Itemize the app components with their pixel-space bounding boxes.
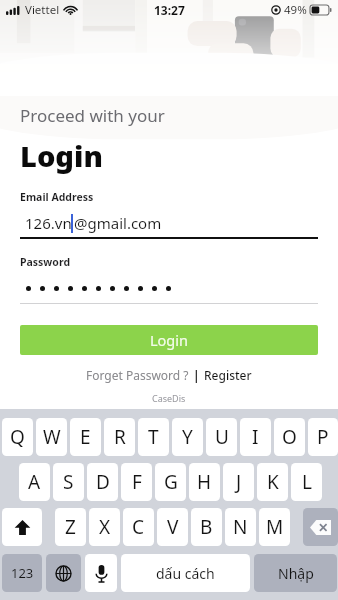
staticText: Email Address: [20, 190, 94, 204]
button[interactable]: R: [104, 418, 135, 456]
button[interactable]: W: [36, 418, 67, 456]
button[interactable]: S: [53, 463, 84, 501]
staticText: J: [236, 469, 242, 495]
staticText: |: [193, 367, 200, 383]
button[interactable]: X: [89, 508, 120, 546]
staticText: G: [164, 469, 178, 495]
staticText: X: [99, 514, 111, 540]
staticText: Viettel: [25, 2, 60, 18]
button[interactable]: Z: [55, 508, 86, 546]
staticText: S: [63, 469, 74, 495]
button[interactable]: B: [191, 508, 222, 546]
button[interactable]: Enter: [254, 554, 337, 592]
staticText: D: [96, 469, 110, 495]
staticText: R: [114, 424, 126, 450]
button[interactable]: U: [206, 418, 237, 456]
button[interactable]: O: [274, 418, 305, 456]
staticText: V: [167, 514, 179, 540]
button[interactable]: V: [157, 508, 188, 546]
button[interactable]: Login: [20, 325, 318, 355]
staticText: F: [132, 469, 142, 495]
staticText: Login: [150, 330, 188, 350]
button[interactable]: P: [308, 418, 338, 456]
button[interactable]: Forget Password ?: [86, 367, 189, 383]
button[interactable]: Space: [121, 554, 250, 592]
staticText: Login: [20, 136, 103, 175]
button[interactable]: Switch keyboard: [46, 554, 81, 592]
staticText: Nhập: [278, 564, 314, 583]
button[interactable]: G: [155, 463, 186, 501]
button[interactable]: N: [225, 508, 256, 546]
button[interactable]: C: [123, 508, 154, 546]
button[interactable]: H: [189, 463, 220, 501]
button[interactable]: Register: [204, 367, 252, 383]
staticText: Forget Password ?: [86, 367, 189, 383]
staticText: dấu cách: [156, 564, 215, 583]
staticText: 126.vn: [25, 213, 72, 233]
button[interactable]: E: [70, 418, 101, 456]
button[interactable]: K: [257, 463, 288, 501]
button[interactable]: D: [87, 463, 118, 501]
staticText: W: [43, 424, 61, 450]
staticText: 123: [11, 564, 34, 582]
staticText: Proceed with your: [20, 104, 165, 127]
button[interactable]: Dictate: [85, 554, 117, 592]
button[interactable]: T: [138, 418, 169, 456]
button[interactable]: M: [259, 508, 290, 546]
staticText: H: [197, 469, 212, 495]
button[interactable]: [20, 277, 318, 299]
button[interactable]: Backspace: [303, 508, 338, 546]
staticText: L: [302, 469, 312, 495]
button[interactable]: F: [121, 463, 152, 501]
staticText: Password: [20, 255, 71, 269]
staticText: C: [132, 514, 145, 540]
staticText: A: [28, 469, 41, 495]
staticText: O: [282, 424, 297, 450]
button[interactable]: Y: [172, 418, 203, 456]
button[interactable]: A: [19, 463, 50, 501]
button[interactable]: Numbers: [2, 554, 42, 592]
button[interactable]: 126.vn: [20, 211, 318, 235]
staticText: 49%: [284, 2, 307, 18]
button[interactable]: Shift: [2, 508, 42, 546]
button[interactable]: L: [291, 463, 322, 501]
staticText: I: [252, 424, 259, 450]
staticText: K: [267, 469, 279, 495]
staticText: Y: [182, 424, 193, 450]
button[interactable]: I: [240, 418, 271, 456]
staticText: M: [266, 514, 284, 540]
staticText: U: [215, 424, 229, 450]
staticText: @gmail.com: [74, 213, 162, 233]
staticText: B: [200, 514, 213, 540]
staticText: T: [148, 424, 159, 450]
staticText: CaseDis: [152, 392, 186, 404]
staticText: 13:27: [154, 2, 185, 18]
staticText: Q: [10, 424, 25, 450]
button[interactable]: J: [223, 463, 254, 501]
staticText: E: [80, 424, 91, 450]
staticText: Z: [65, 514, 76, 540]
staticText: Register: [204, 367, 252, 383]
staticText: P: [317, 424, 329, 450]
staticText: N: [233, 514, 248, 540]
button[interactable]: Q: [2, 418, 33, 456]
